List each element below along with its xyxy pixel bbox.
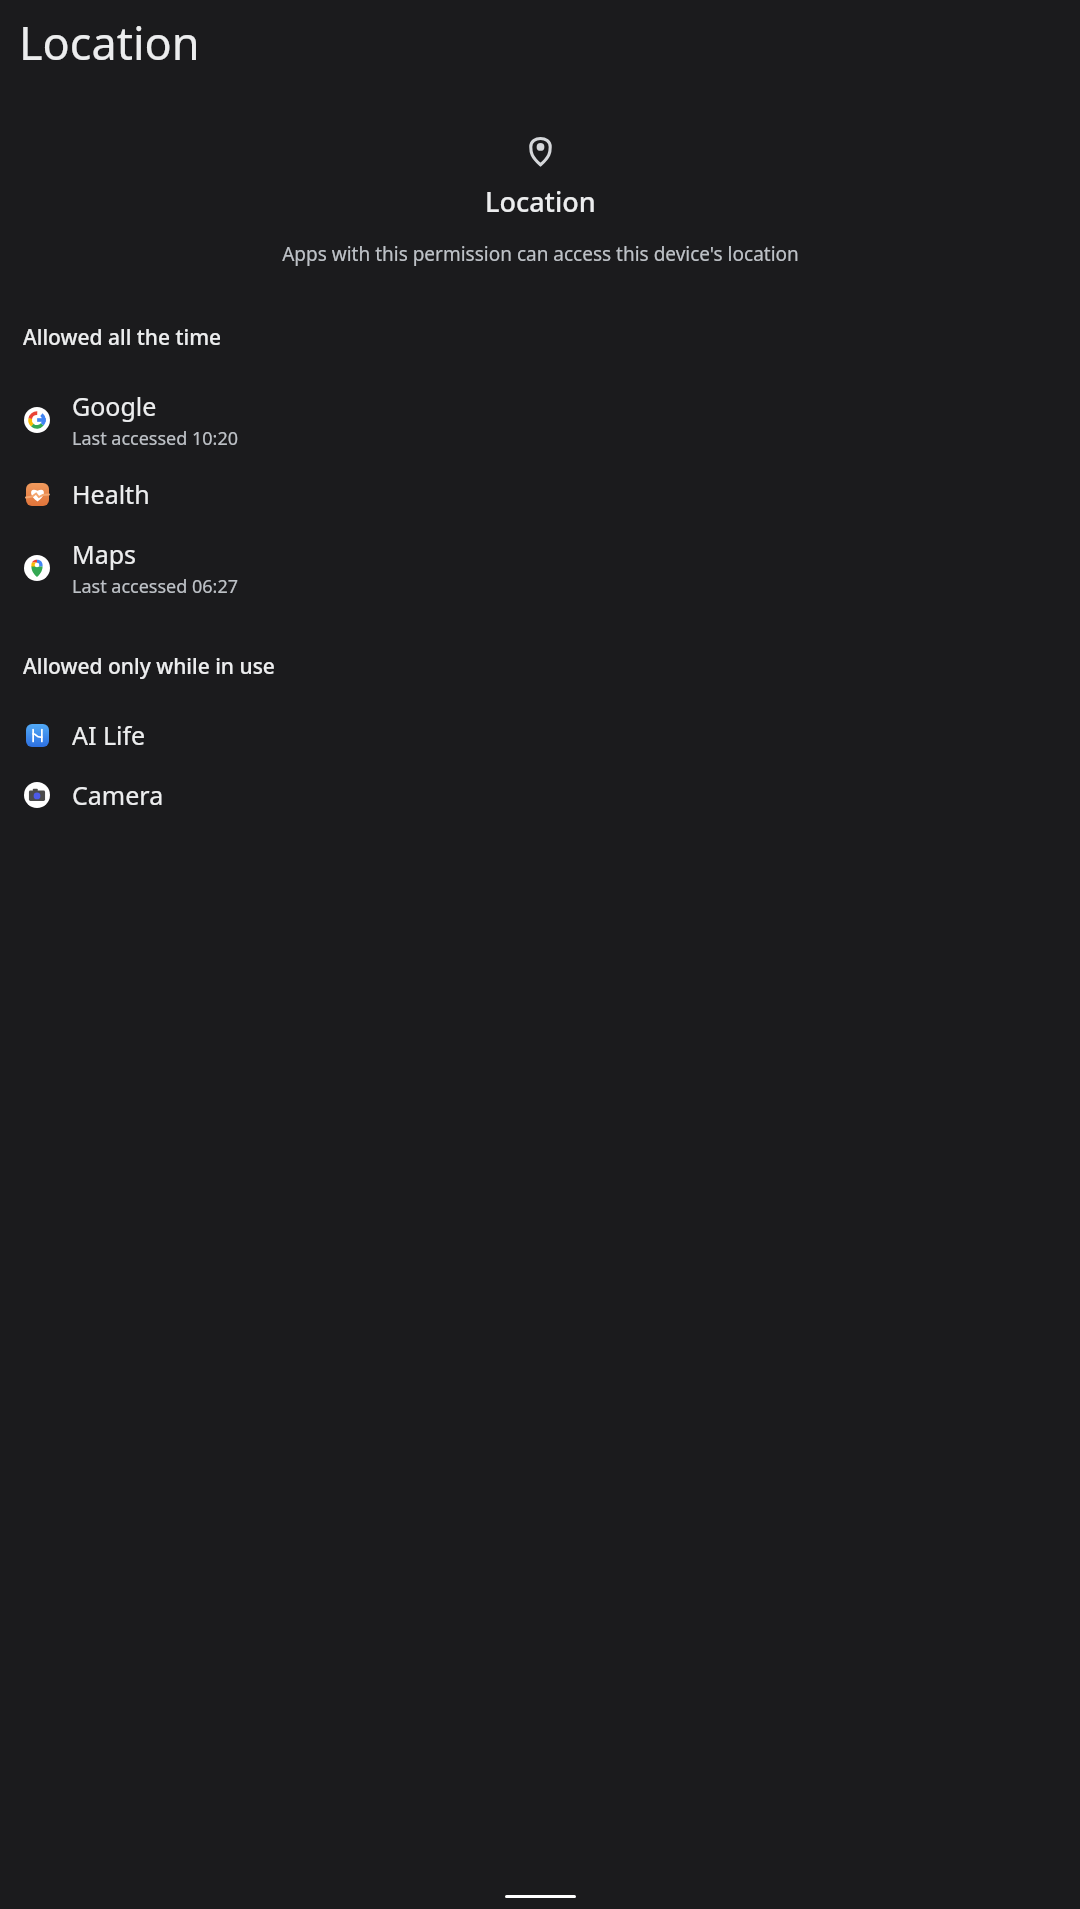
staticText: Apps with this permission can access thi… [282, 241, 799, 267]
staticText: Camera [72, 778, 164, 812]
staticText: Maps [72, 537, 137, 571]
staticText: Google [72, 389, 157, 423]
other: AI Life [26, 724, 49, 747]
other: Health [26, 483, 49, 506]
staticText: AI Life [72, 718, 146, 752]
staticText: Allowed only while in use [23, 652, 275, 681]
other: Maps [24, 555, 50, 581]
button[interactable]: Maps [0, 524, 1080, 612]
other: Camera [24, 782, 50, 808]
button[interactable]: AI Life [0, 705, 1080, 765]
button[interactable]: Camera [0, 765, 1080, 825]
staticText: Health [72, 477, 150, 511]
button[interactable]: Google [0, 376, 1080, 464]
staticText: Allowed all the time [23, 323, 222, 352]
staticText: Last accessed 10:20 [72, 426, 239, 451]
staticText: Location [19, 12, 200, 73]
button[interactable]: Health [0, 464, 1080, 524]
other: Google [24, 407, 50, 433]
staticText: Last accessed 06:27 [72, 574, 239, 599]
staticText: Location [485, 183, 596, 220]
